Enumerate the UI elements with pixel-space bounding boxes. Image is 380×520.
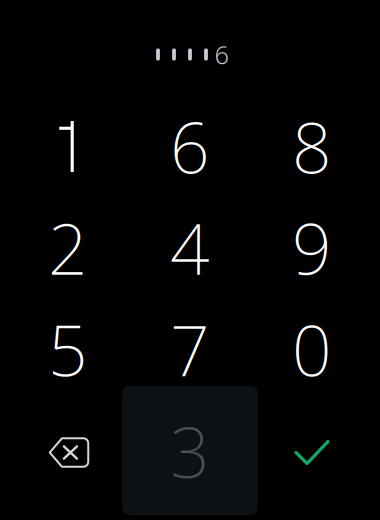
button[interactable]: 4 (129, 197, 251, 299)
staticText: 6 (214, 38, 228, 71)
staticText: 6 (170, 100, 210, 193)
button[interactable]: 1 (5, 95, 127, 197)
staticText: 9 (292, 202, 332, 294)
button[interactable]: 6 (129, 95, 251, 197)
button[interactable]: 9 (251, 197, 373, 299)
button[interactable]: 5 (7, 298, 129, 400)
staticText: 4 (170, 202, 210, 294)
button[interactable]: 2 (7, 197, 129, 299)
staticText: 3 (170, 405, 210, 497)
staticText: 2 (48, 202, 88, 294)
button[interactable]: 8 (251, 95, 373, 197)
button[interactable]: 3 (122, 386, 258, 515)
button[interactable]: 0 (251, 298, 373, 400)
button[interactable]: 7 (129, 298, 251, 400)
staticText: 5 (48, 303, 88, 395)
button[interactable]: Confirm (251, 401, 373, 503)
button[interactable]: Delete (7, 401, 129, 503)
staticText: 8 (292, 100, 332, 193)
staticText: 0 (292, 303, 332, 395)
staticText: 7 (170, 303, 210, 395)
